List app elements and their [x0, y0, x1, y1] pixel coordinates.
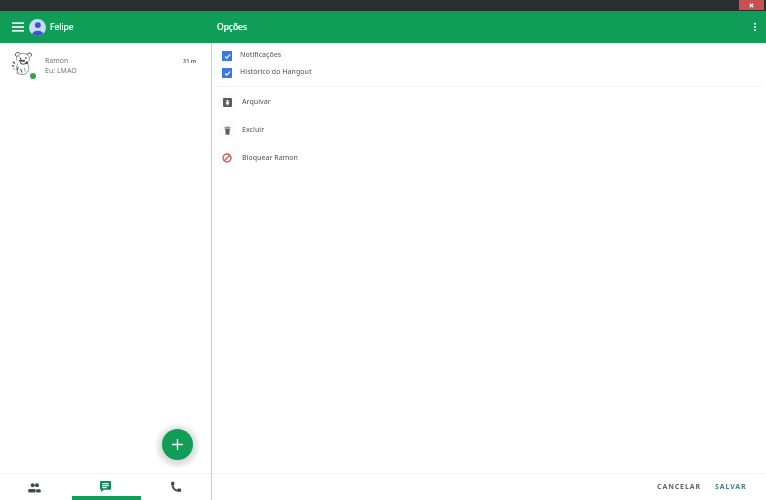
staticText: Opções [217, 21, 247, 33]
staticText: Ramon [45, 56, 69, 66]
button[interactable]: More options [746, 18, 764, 36]
button[interactable]: Close window [739, 0, 764, 10]
staticText: Histórico do Hangout [240, 67, 312, 77]
button[interactable]: Start new conversation [162, 429, 193, 460]
staticText: Eu: LMAO [45, 66, 77, 76]
button[interactable]: Contacts [0, 474, 71, 500]
button[interactable]: Histórico do Hangout [212, 60, 766, 77]
button[interactable]: SALVAR [709, 477, 753, 497]
staticText: 31 m [183, 57, 197, 64]
button[interactable]: Arquivar [212, 90, 766, 118]
button[interactable]: Chats [71, 474, 141, 500]
staticText: Bloquear Ramon [242, 153, 298, 163]
button[interactable]: Ramon [0, 43, 211, 87]
button[interactable]: Excluir [212, 118, 766, 146]
staticText: Felipe [50, 21, 74, 33]
staticText: Excluir [242, 125, 265, 135]
button[interactable]: Calls [141, 474, 211, 500]
button[interactable]: Open navigation menu [9, 18, 27, 36]
button[interactable]: CANCELAR [651, 477, 707, 497]
button[interactable]: Notificações [212, 43, 766, 60]
staticText: Notificações [240, 50, 282, 60]
staticText: CANCELAR [657, 482, 701, 492]
staticText: Arquivar [242, 97, 271, 107]
staticText: SALVAR [715, 482, 747, 492]
button[interactable]: Bloquear Ramon [212, 146, 766, 174]
